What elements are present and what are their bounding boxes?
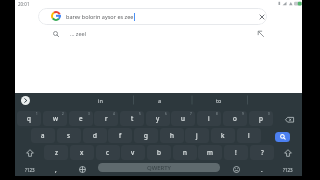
button[interactable]: [70, 162, 94, 177]
staticText: z: [55, 148, 58, 157]
staticText: c: [106, 148, 110, 157]
staticText: 5: [139, 112, 141, 116]
button[interactable]: g: [134, 128, 158, 143]
button[interactable]: v: [121, 145, 145, 160]
button[interactable]: t: [120, 111, 144, 126]
staticText: a: [158, 97, 162, 104]
staticText: .: [261, 165, 263, 174]
staticText: q: [27, 114, 31, 123]
button[interactable]: ?123: [276, 162, 300, 177]
button[interactable]: k: [211, 128, 235, 143]
button[interactable]: r: [94, 111, 118, 126]
staticText: u: [181, 114, 185, 123]
button[interactable]: q: [17, 111, 41, 126]
staticText: 6: [165, 112, 167, 116]
staticText: w: [53, 114, 58, 123]
staticText: r: [105, 114, 108, 123]
staticText: ?123: [283, 167, 293, 173]
staticText: x: [80, 148, 84, 157]
staticText: ?123: [25, 167, 35, 173]
staticText: 4: [113, 112, 115, 116]
button[interactable]: [21, 96, 30, 105]
staticText: in: [98, 97, 103, 104]
staticText: 0: [268, 112, 270, 116]
staticText: j: [196, 131, 198, 140]
button[interactable]: a: [140, 94, 180, 107]
staticText: 7: [190, 112, 192, 116]
button[interactable]: m: [198, 145, 222, 160]
staticText: i: [208, 114, 210, 123]
button[interactable]: [38, 8, 267, 25]
staticText: to: [216, 97, 222, 104]
button[interactable]: d: [83, 128, 107, 143]
button[interactable]: c: [96, 145, 120, 160]
button[interactable]: o: [223, 111, 247, 126]
staticText: a: [41, 131, 45, 140]
button[interactable]: to: [199, 94, 239, 107]
button[interactable]: x: [70, 145, 94, 160]
staticText: QWERTY: [147, 164, 172, 172]
button[interactable]: i: [197, 111, 221, 126]
staticText: k: [221, 131, 225, 140]
button[interactable]: [281, 115, 297, 125]
button[interactable]: !: [224, 145, 248, 160]
button[interactable]: l: [237, 128, 261, 143]
staticText: 2: [62, 112, 64, 116]
staticText: barev bolorin aysor es zee: [66, 13, 134, 20]
staticText: ?: [261, 148, 264, 157]
button[interactable]: ,: [44, 162, 68, 177]
staticText: d: [93, 131, 97, 140]
staticText: 3: [88, 112, 90, 116]
button[interactable]: [224, 162, 248, 177]
button[interactable]: .: [250, 162, 274, 177]
button[interactable]: s: [57, 128, 81, 143]
button[interactable]: w: [43, 111, 67, 126]
button[interactable]: n: [173, 145, 197, 160]
button[interactable]: z: [44, 145, 68, 160]
staticText: t: [131, 114, 134, 123]
button[interactable]: [275, 132, 290, 142]
button[interactable]: f: [108, 128, 132, 143]
button[interactable]: e: [69, 111, 93, 126]
staticText: o: [233, 114, 237, 123]
staticText: n: [183, 148, 187, 157]
staticText: f: [119, 131, 122, 140]
staticText: !: [235, 148, 237, 157]
staticText: ,: [55, 165, 57, 174]
staticText: p: [259, 114, 263, 123]
staticText: 1: [36, 112, 38, 116]
button[interactable]: ?123: [18, 162, 42, 177]
staticText: ... zeel: [70, 30, 87, 37]
button[interactable]: b: [147, 145, 171, 160]
staticText: e: [79, 114, 83, 123]
staticText: g: [144, 131, 148, 140]
staticText: v: [131, 148, 135, 157]
button[interactable]: [259, 14, 265, 20]
button[interactable]: ?: [250, 145, 274, 160]
button[interactable]: [18, 145, 42, 160]
staticText: b: [157, 148, 161, 157]
button[interactable]: h: [160, 128, 184, 143]
staticText: s: [67, 131, 71, 140]
button[interactable]: u: [171, 111, 195, 126]
staticText: l: [248, 131, 250, 140]
button[interactable]: j: [185, 128, 209, 143]
button[interactable]: in: [80, 94, 120, 107]
staticText: 9: [242, 112, 244, 116]
staticText: 8: [216, 112, 218, 116]
button[interactable]: y: [146, 111, 170, 126]
button[interactable]: ... zeel: [38, 26, 267, 41]
button[interactable]: QWERTY: [98, 163, 220, 172]
staticText: h: [170, 131, 174, 140]
button[interactable]: p: [249, 111, 273, 126]
button[interactable]: [276, 145, 300, 160]
button[interactable]: a: [31, 128, 55, 143]
staticText: 20:01: [18, 1, 30, 7]
staticText: m: [207, 148, 213, 157]
staticText: y: [156, 114, 160, 123]
